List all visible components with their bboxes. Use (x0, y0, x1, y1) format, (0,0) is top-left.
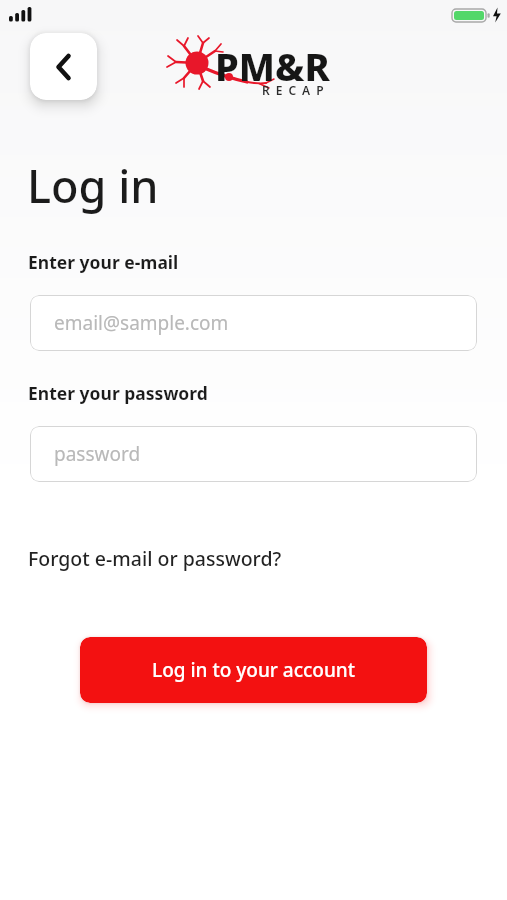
staticText: Enter your e-mail (28, 250, 179, 274)
button[interactable]: Log in to your account (80, 637, 427, 703)
staticText: password (54, 441, 141, 467)
button[interactable]: Forgot e-mail or password? (28, 545, 282, 572)
staticText: email@sample.com (54, 310, 229, 336)
staticText: Log in (27, 155, 159, 216)
staticText: PM&R (215, 40, 330, 92)
staticText: RECAP (262, 82, 330, 98)
button[interactable]: email@sample.com (30, 295, 477, 351)
staticText: Enter your password (28, 381, 208, 405)
staticText: Log in to your account (152, 657, 356, 683)
button[interactable] (30, 33, 97, 100)
button[interactable]: password (30, 426, 477, 482)
